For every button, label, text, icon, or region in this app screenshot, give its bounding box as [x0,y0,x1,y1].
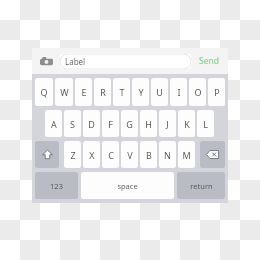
button[interactable]: R [94,78,111,106]
staticText: S [70,118,75,130]
button[interactable]: H [140,110,157,137]
staticText: R [100,86,106,98]
staticText: Z [70,149,76,161]
staticText: I [177,86,181,98]
staticText: J [166,118,169,130]
staticText: L [203,118,208,130]
staticText: Send [199,55,219,67]
staticText: W [60,86,69,98]
button[interactable]: I [170,78,187,106]
staticText: F [108,118,113,130]
button[interactable]: W [55,78,73,106]
button[interactable]: Shift [35,141,59,168]
staticText: T [119,86,125,98]
button[interactable]: K [178,110,195,137]
button[interactable]: M [178,141,195,168]
staticText: M [182,149,191,161]
button[interactable]: G [121,110,138,137]
button[interactable]: T [113,78,130,106]
staticText: Y [138,86,144,98]
button[interactable]: F [102,110,119,137]
staticText: V [127,149,133,161]
staticText: Label [65,56,86,67]
staticText: 123 [50,181,63,191]
button[interactable]: Camera [38,53,55,70]
staticText: X [89,149,95,161]
button[interactable]: Backspace [200,141,225,168]
button[interactable]: 123 [35,172,78,199]
button[interactable]: C [102,141,119,168]
button[interactable]: P [208,78,225,106]
button[interactable]: Z [64,141,81,168]
staticText: C [108,149,114,161]
button[interactable]: Send [196,52,222,70]
staticText: A [51,118,57,130]
button[interactable]: L [197,110,214,137]
button[interactable]: space [81,172,174,199]
button[interactable]: D [83,110,100,137]
button[interactable]: S [64,110,81,137]
staticText: space [117,181,138,191]
button[interactable]: Q [35,78,53,106]
staticText: O [194,86,202,98]
button[interactable]: E [75,78,92,106]
button[interactable]: X [83,141,100,168]
button[interactable]: J [159,110,176,137]
staticText: E [81,86,87,98]
button[interactable]: U [151,78,168,106]
staticText: D [88,118,95,130]
button[interactable]: A [45,110,62,137]
staticText: P [214,86,220,98]
button[interactable]: B [140,141,157,168]
button[interactable]: Label [60,54,191,69]
staticText: Q [40,86,48,98]
button[interactable]: N [159,141,176,168]
button[interactable]: V [121,141,138,168]
button[interactable]: Y [132,78,149,106]
staticText: N [164,149,171,161]
staticText: K [184,118,190,130]
staticText: G [126,118,133,130]
staticText: U [156,86,163,98]
button[interactable]: O [189,78,206,106]
staticText: B [146,149,152,161]
staticText: H [145,118,152,130]
button[interactable]: return [177,172,225,199]
staticText: return [190,181,213,191]
